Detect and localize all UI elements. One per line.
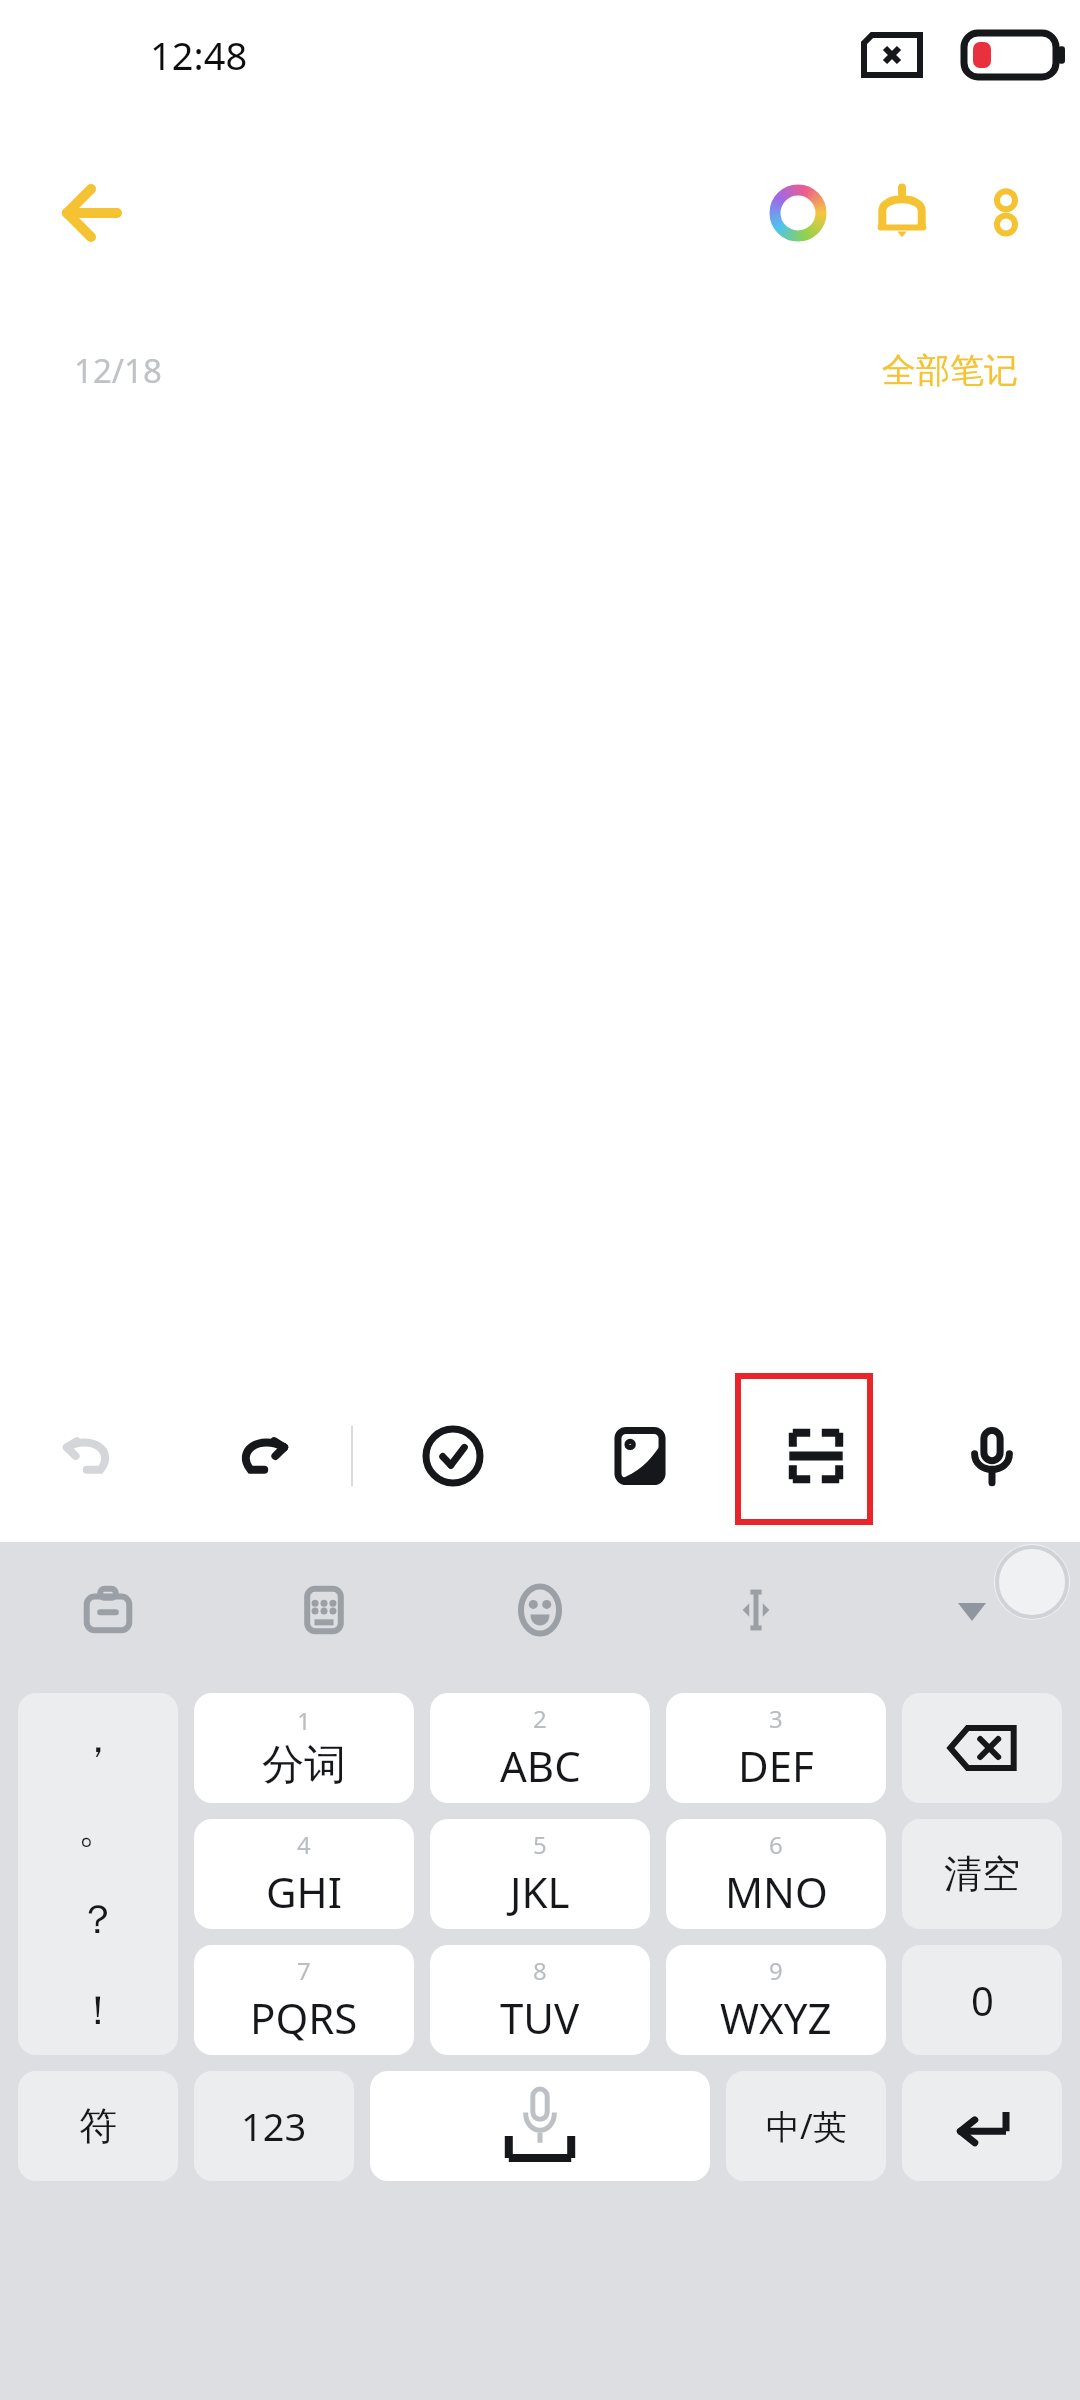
button[interactable]: 符 bbox=[18, 2071, 178, 2181]
button[interactable]: 4 bbox=[194, 1819, 414, 1929]
staticText: DEF bbox=[738, 1737, 814, 1794]
button[interactable]: 5 bbox=[430, 1819, 650, 1929]
staticText: 123 bbox=[241, 2100, 307, 2152]
staticText: 2 bbox=[533, 1702, 547, 1735]
button[interactable]: 7 bbox=[194, 1945, 414, 2055]
button[interactable]: Hide keyboard bbox=[864, 1542, 1080, 1677]
staticText: ！ bbox=[78, 1985, 118, 2035]
button[interactable]: Delete bbox=[902, 1693, 1062, 1803]
staticText: WXYZ bbox=[720, 1989, 832, 2046]
button[interactable]: ， bbox=[18, 1693, 178, 1783]
staticText: 5 bbox=[533, 1828, 547, 1861]
staticText: TUV bbox=[500, 1989, 580, 2046]
button[interactable]: Undo bbox=[0, 1366, 175, 1546]
button[interactable]: Reminder bbox=[850, 161, 954, 265]
staticText: GHI bbox=[266, 1863, 342, 1920]
button[interactable]: 6 bbox=[666, 1819, 886, 1929]
staticText: 4 bbox=[297, 1828, 311, 1861]
button[interactable]: Toolbox bbox=[0, 1542, 216, 1677]
button[interactable]: 。 bbox=[18, 1783, 178, 1873]
staticText: 符 bbox=[79, 2102, 117, 2150]
button[interactable]: Todo list bbox=[353, 1366, 552, 1546]
staticText: 。 bbox=[78, 1803, 118, 1853]
staticText: 7 bbox=[297, 1954, 311, 1987]
button[interactable]: Scan text bbox=[728, 1366, 904, 1546]
staticText: 3 bbox=[769, 1702, 783, 1735]
staticText: 9 bbox=[769, 1954, 783, 1987]
button[interactable]: Redo bbox=[175, 1366, 351, 1546]
button[interactable]: More options bbox=[954, 161, 1058, 265]
staticText: 6 bbox=[769, 1828, 783, 1861]
staticText: 12/18 bbox=[74, 348, 162, 393]
staticText: 中/英 bbox=[766, 2103, 847, 2149]
staticText: ， bbox=[78, 1713, 118, 1763]
staticText: MNO bbox=[725, 1863, 828, 1920]
staticText: PQRS bbox=[250, 1989, 358, 2046]
staticText: 清空 bbox=[944, 1850, 1020, 1898]
button[interactable]: Move cursor bbox=[648, 1542, 864, 1677]
button[interactable]: 清空 bbox=[902, 1819, 1062, 1929]
staticText: JKL bbox=[510, 1863, 570, 1920]
button[interactable]: 1 bbox=[194, 1693, 414, 1803]
staticText: ABC bbox=[500, 1737, 581, 1794]
button[interactable]: Voice input bbox=[904, 1366, 1080, 1546]
button[interactable]: 123 bbox=[194, 2071, 354, 2181]
staticText: 0 bbox=[971, 1973, 994, 2027]
staticText: 分词 bbox=[262, 1739, 346, 1792]
button[interactable]: ？ bbox=[18, 1873, 178, 1964]
button[interactable]: 3 bbox=[666, 1693, 886, 1803]
button[interactable]: 8 bbox=[430, 1945, 650, 2055]
button[interactable]: 全部笔记 bbox=[876, 343, 1024, 398]
staticText: ？ bbox=[78, 1894, 118, 1944]
button[interactable]: Theme color bbox=[746, 161, 850, 265]
staticText: 1 bbox=[297, 1704, 311, 1737]
button[interactable]: ！ bbox=[18, 1964, 178, 2055]
button[interactable]: Keyboard layout bbox=[216, 1542, 432, 1677]
button[interactable]: 0 bbox=[902, 1945, 1062, 2055]
button[interactable]: 2 bbox=[430, 1693, 650, 1803]
staticText: 12:48 bbox=[150, 29, 248, 81]
button[interactable]: Space bbox=[370, 2071, 710, 2181]
button[interactable]: Back bbox=[36, 158, 146, 268]
button[interactable]: Enter bbox=[902, 2071, 1062, 2181]
staticText: 8 bbox=[533, 1954, 547, 1987]
button[interactable]: Insert image bbox=[552, 1366, 728, 1546]
button[interactable]: Emoji bbox=[432, 1542, 648, 1677]
staticText: 全部笔记 bbox=[882, 349, 1018, 392]
button[interactable]: 9 bbox=[666, 1945, 886, 2055]
button[interactable]: 中/英 bbox=[726, 2071, 886, 2181]
